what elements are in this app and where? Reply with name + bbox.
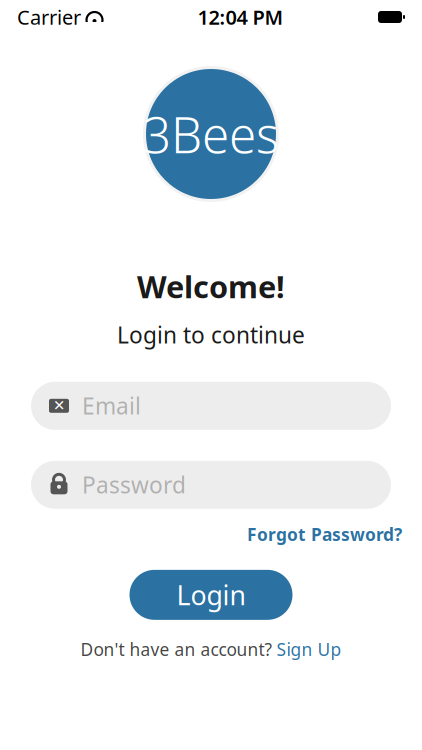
staticText: Welcome! (137, 266, 285, 307)
staticText: Don't have an account? (80, 638, 272, 661)
staticText: Login (176, 577, 245, 612)
staticText: Password (82, 470, 186, 500)
staticText: 3Bees (143, 101, 279, 167)
staticText: Sign Up (276, 638, 341, 661)
staticText: Email (82, 391, 141, 421)
staticText: Forgot Password? (247, 523, 402, 546)
staticText: 12:04 PM (197, 4, 283, 30)
staticText: Login to continue (117, 320, 305, 350)
staticText: ✕ (53, 397, 65, 414)
button[interactable]: Forgot Password? (247, 523, 402, 546)
staticText: Carrier (17, 4, 81, 30)
button[interactable]: Login (129, 570, 292, 620)
button[interactable]: Don't have an account? (80, 638, 341, 661)
